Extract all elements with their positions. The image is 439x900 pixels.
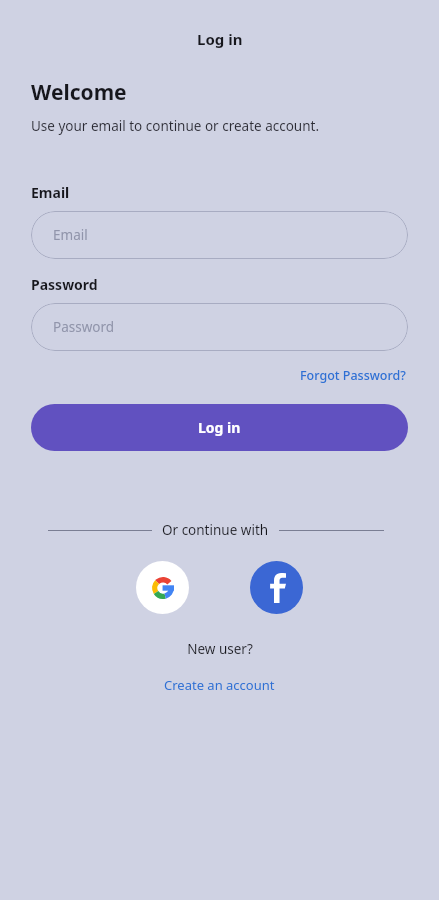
button[interactable]: Create an account: [160, 674, 279, 696]
button[interactable]: Continue with Facebook: [250, 561, 303, 614]
staticText: Email: [31, 183, 70, 202]
staticText: Welcome: [31, 78, 127, 107]
staticText: Create an account: [164, 676, 275, 694]
button[interactable]: Forgot Password?: [298, 365, 408, 386]
staticText: Log in: [198, 418, 241, 437]
button[interactable]: Password: [31, 303, 408, 351]
staticText: Log in: [197, 29, 243, 49]
staticText: Email: [53, 226, 88, 244]
staticText: New user?: [187, 640, 253, 658]
staticText: Use your email to continue or create acc…: [31, 117, 320, 135]
button[interactable]: Email: [31, 211, 408, 259]
staticText: Password: [53, 318, 115, 336]
button[interactable]: Log in: [31, 404, 408, 451]
staticText: Or continue with: [162, 521, 269, 539]
staticText: Forgot Password?: [300, 367, 406, 384]
button[interactable]: Continue with Google: [136, 561, 189, 614]
staticText: Password: [31, 275, 98, 294]
